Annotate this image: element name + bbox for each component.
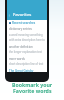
staticText: short description line of text [9, 62, 44, 66]
staticText: Favorites [13, 12, 32, 18]
staticText: the longer explanation text that fills t… [9, 50, 45, 54]
staticText: Bookmark your [12, 81, 53, 88]
staticText: with extra description here to fill [9, 38, 45, 42]
button[interactable]: Recent searches [9, 21, 45, 25]
button[interactable]: Back [8, 10, 47, 20]
staticText: more words [9, 57, 25, 61]
staticText: a word meaning something [9, 33, 43, 37]
other: Back [8, 14, 11, 17]
staticText: Favorite words [13, 87, 52, 94]
staticText: another definition [9, 45, 33, 49]
staticText: Recent searches [12, 21, 36, 25]
staticText: The Great Gatsby [9, 69, 34, 72]
staticText: dictionary entries [9, 27, 32, 31]
